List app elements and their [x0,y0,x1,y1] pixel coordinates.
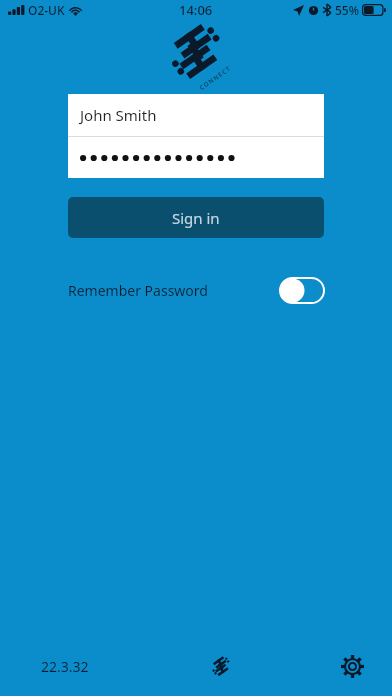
button[interactable]: Remember Password [68,270,325,310]
button[interactable]: Settings [312,640,392,692]
button[interactable]: John Smith [68,94,324,136]
button[interactable]: Sign in [68,197,324,238]
button[interactable] [68,137,324,178]
staticText: Sign in [172,208,220,228]
staticText: 14:06 [179,1,213,19]
button[interactable]: Home [195,640,247,692]
staticText: John Smith [80,105,157,125]
staticText: Remember Password [68,281,208,300]
button[interactable]: 22.3.32 [0,642,130,690]
staticText: CONNECT [198,64,233,92]
staticText: 55% [335,2,359,18]
staticText: O2-UK [28,2,65,18]
staticText: 22.3.32 [41,657,89,676]
button[interactable]: Remember password toggle [279,277,325,304]
